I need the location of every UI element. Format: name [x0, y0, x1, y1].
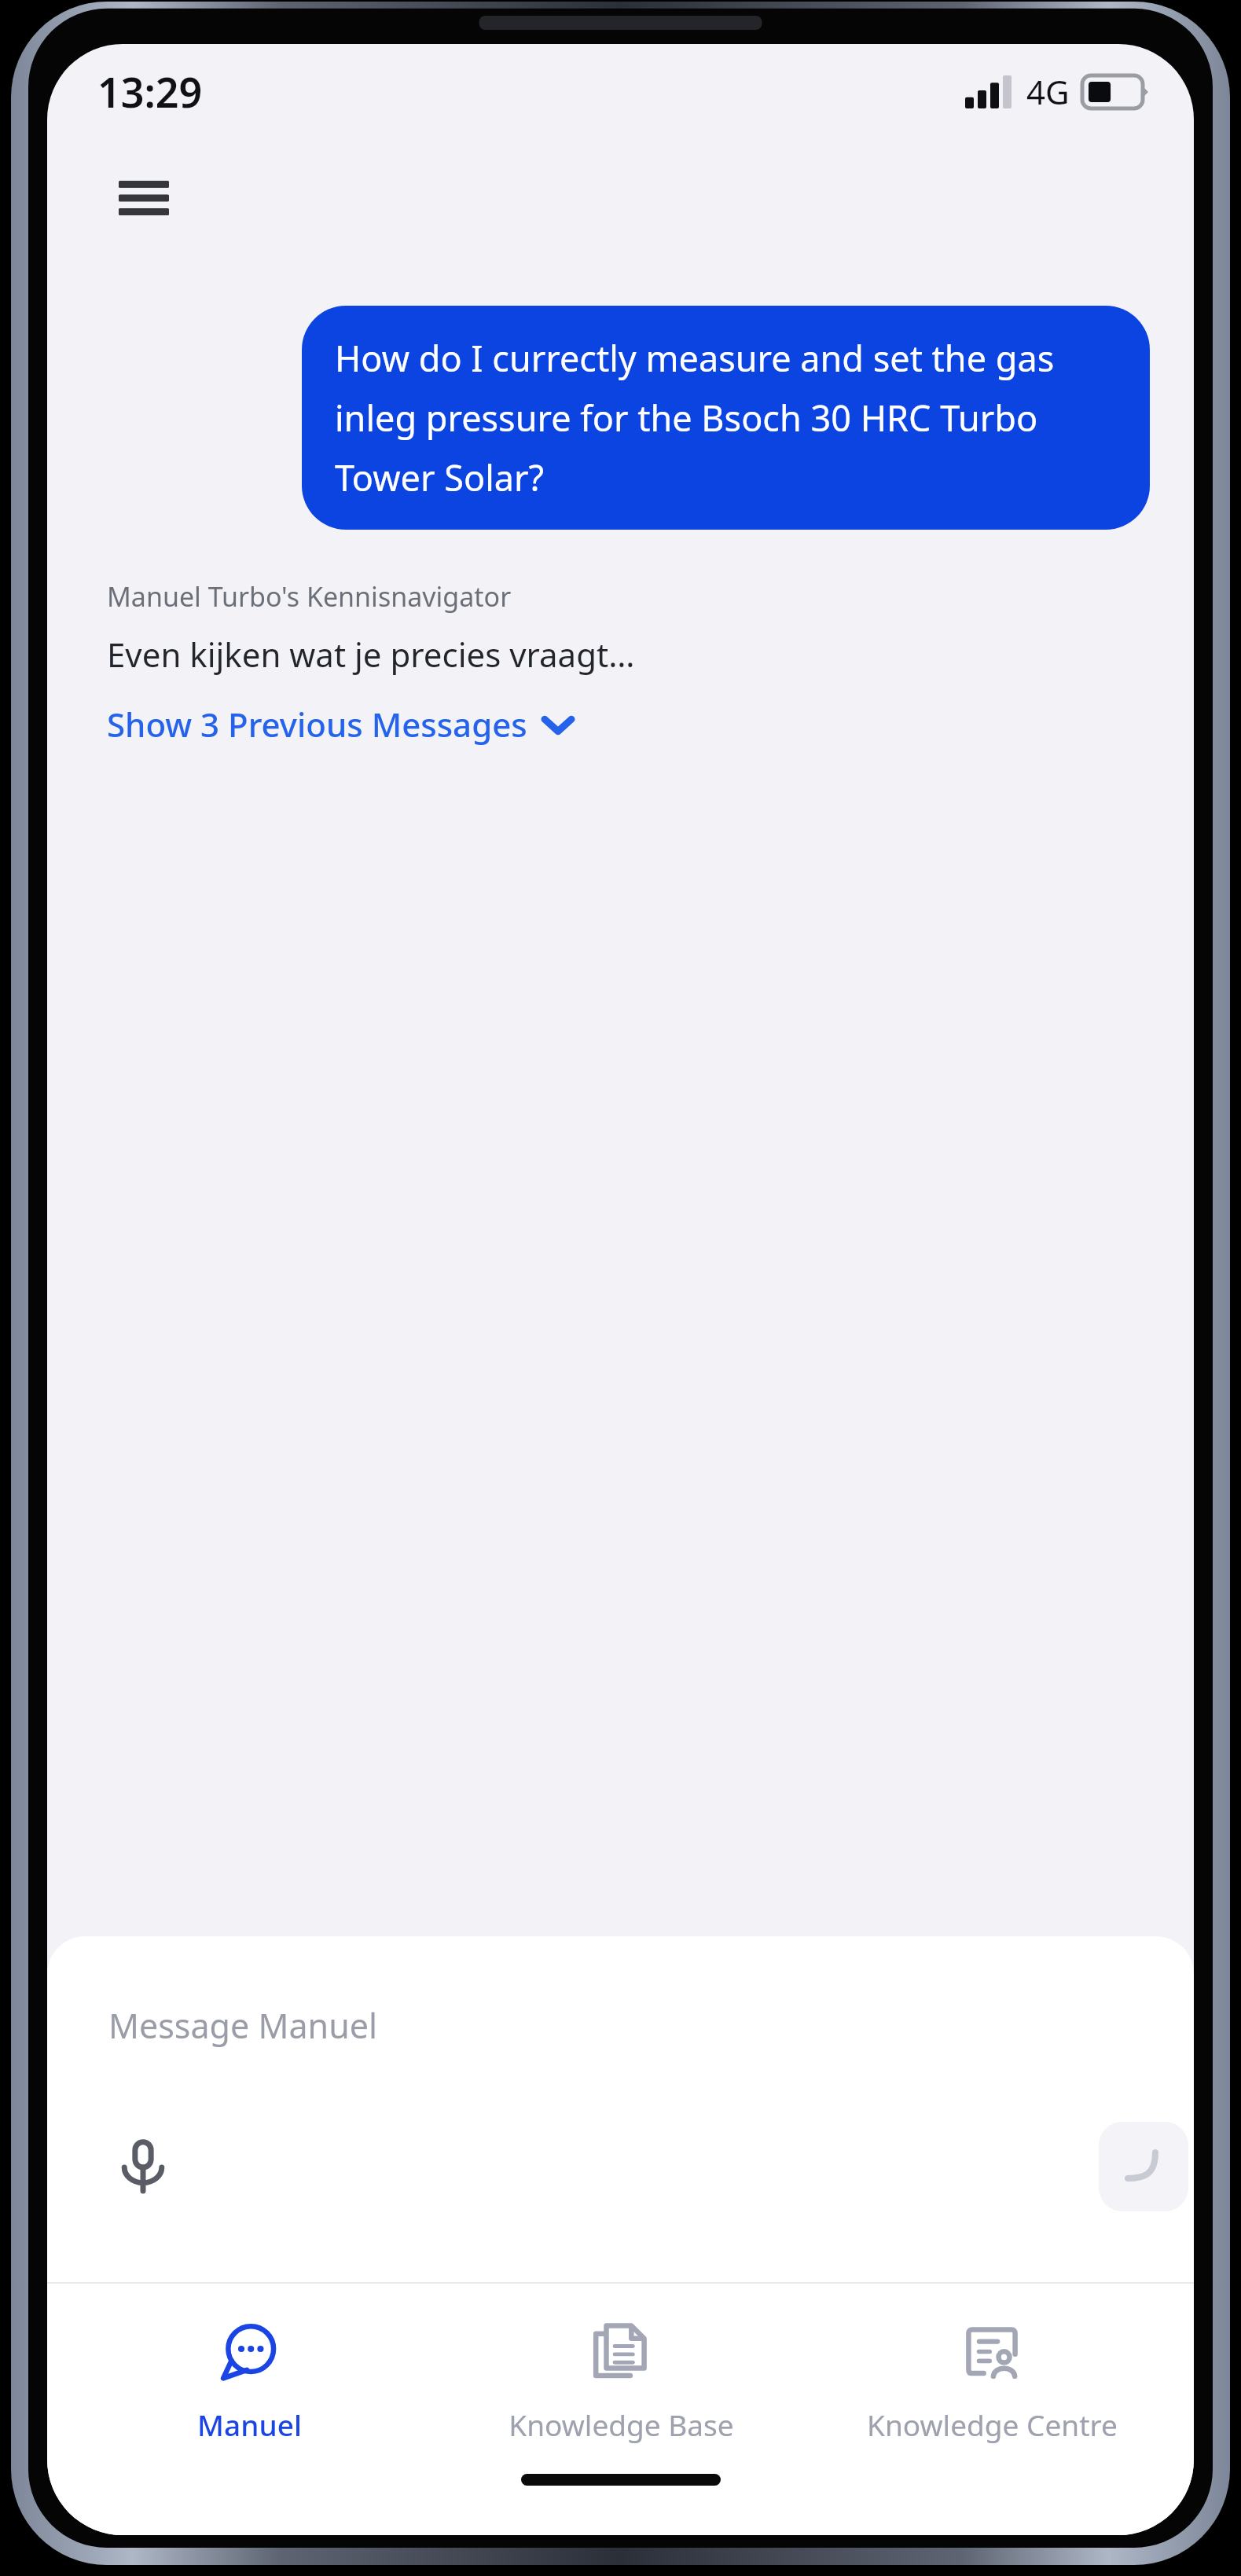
- staticText: Manuel Turbo's Kennisnavigator: [107, 578, 512, 615]
- staticText: Knowledge Base: [509, 2405, 734, 2444]
- button[interactable]: Manuel: [80, 2284, 418, 2457]
- staticText: Knowledge Centre: [867, 2405, 1118, 2444]
- staticText: Manuel: [197, 2405, 302, 2444]
- button[interactable]: Knowledge Base: [452, 2284, 790, 2457]
- button[interactable]: Voice input: [97, 2122, 189, 2213]
- staticText: Even kijken wat je precies vraagt…: [107, 632, 635, 677]
- button[interactable]: Send: [1099, 2122, 1188, 2211]
- staticText: Show 3 Previous Messages: [107, 702, 527, 747]
- staticText: Message Manuel: [108, 2002, 378, 2049]
- button[interactable]: Show 3 Previous Messages: [107, 695, 571, 753]
- staticText: 4G: [1026, 69, 1070, 114]
- button[interactable]: Menu: [107, 165, 181, 231]
- button[interactable]: How do I currectly measure and set the g…: [302, 306, 1150, 530]
- staticText: How do I currectly measure and set the g…: [335, 334, 1117, 501]
- staticText: 13:29: [97, 64, 203, 119]
- button[interactable]: Knowledge Centre: [823, 2284, 1161, 2457]
